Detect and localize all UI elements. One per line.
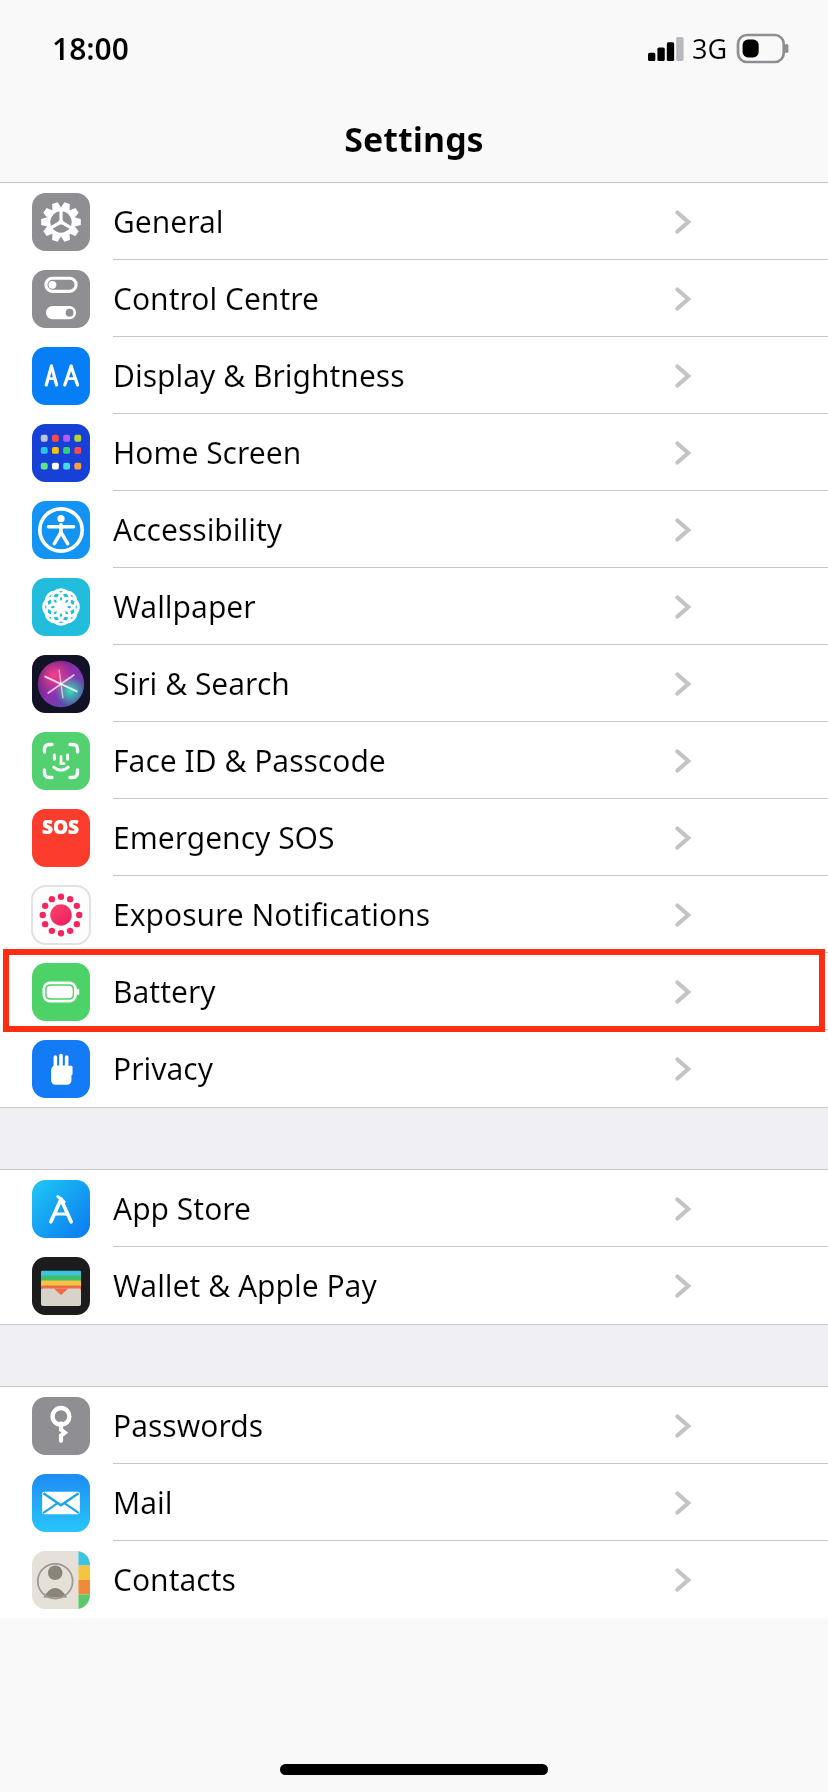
- staticText: 18:00: [52, 28, 129, 69]
- button[interactable]: Wallpaper: [0, 568, 828, 645]
- staticText: Passwords: [113, 1405, 264, 1446]
- staticText: Battery: [113, 971, 216, 1012]
- button[interactable]: Passwords: [0, 1387, 828, 1464]
- button[interactable]: App Store: [0, 1170, 828, 1247]
- button[interactable]: Privacy: [0, 1030, 828, 1107]
- button[interactable]: Wallet & Apple Pay: [0, 1247, 828, 1324]
- staticText: Siri & Search: [113, 663, 290, 704]
- button[interactable]: Battery: [0, 953, 828, 1030]
- staticText: Wallet & Apple Pay: [113, 1265, 377, 1306]
- staticText: Contacts: [113, 1559, 236, 1600]
- staticText: Face ID & Passcode: [113, 740, 386, 781]
- staticText: Settings: [344, 116, 484, 162]
- staticText: App Store: [113, 1188, 252, 1229]
- staticText: Mail: [113, 1482, 173, 1523]
- staticText: Privacy: [113, 1048, 214, 1089]
- staticText: General: [113, 201, 224, 242]
- button[interactable]: Contacts: [0, 1541, 828, 1618]
- staticText: SOS: [42, 814, 80, 840]
- staticText: Home Screen: [113, 432, 302, 473]
- button[interactable]: Mail: [0, 1464, 828, 1541]
- button[interactable]: Home Screen: [0, 414, 828, 491]
- button[interactable]: Accessibility: [0, 491, 828, 568]
- button[interactable]: Face ID & Passcode: [0, 722, 828, 799]
- button[interactable]: Control Centre: [0, 260, 828, 337]
- staticText: Accessibility: [113, 509, 283, 550]
- staticText: Control Centre: [113, 278, 319, 319]
- staticText: 3G: [692, 30, 728, 67]
- button[interactable]: Emergency SOS: [0, 799, 828, 876]
- staticText: Wallpaper: [113, 586, 256, 627]
- staticText: Display & Brightness: [113, 355, 405, 396]
- staticText: Emergency SOS: [113, 817, 335, 858]
- staticText: Exposure Notifications: [113, 894, 431, 935]
- button[interactable]: Display & Brightness: [0, 337, 828, 414]
- button[interactable]: Siri & Search: [0, 645, 828, 722]
- button[interactable]: General: [0, 183, 828, 260]
- button[interactable]: Exposure Notifications: [0, 876, 828, 953]
